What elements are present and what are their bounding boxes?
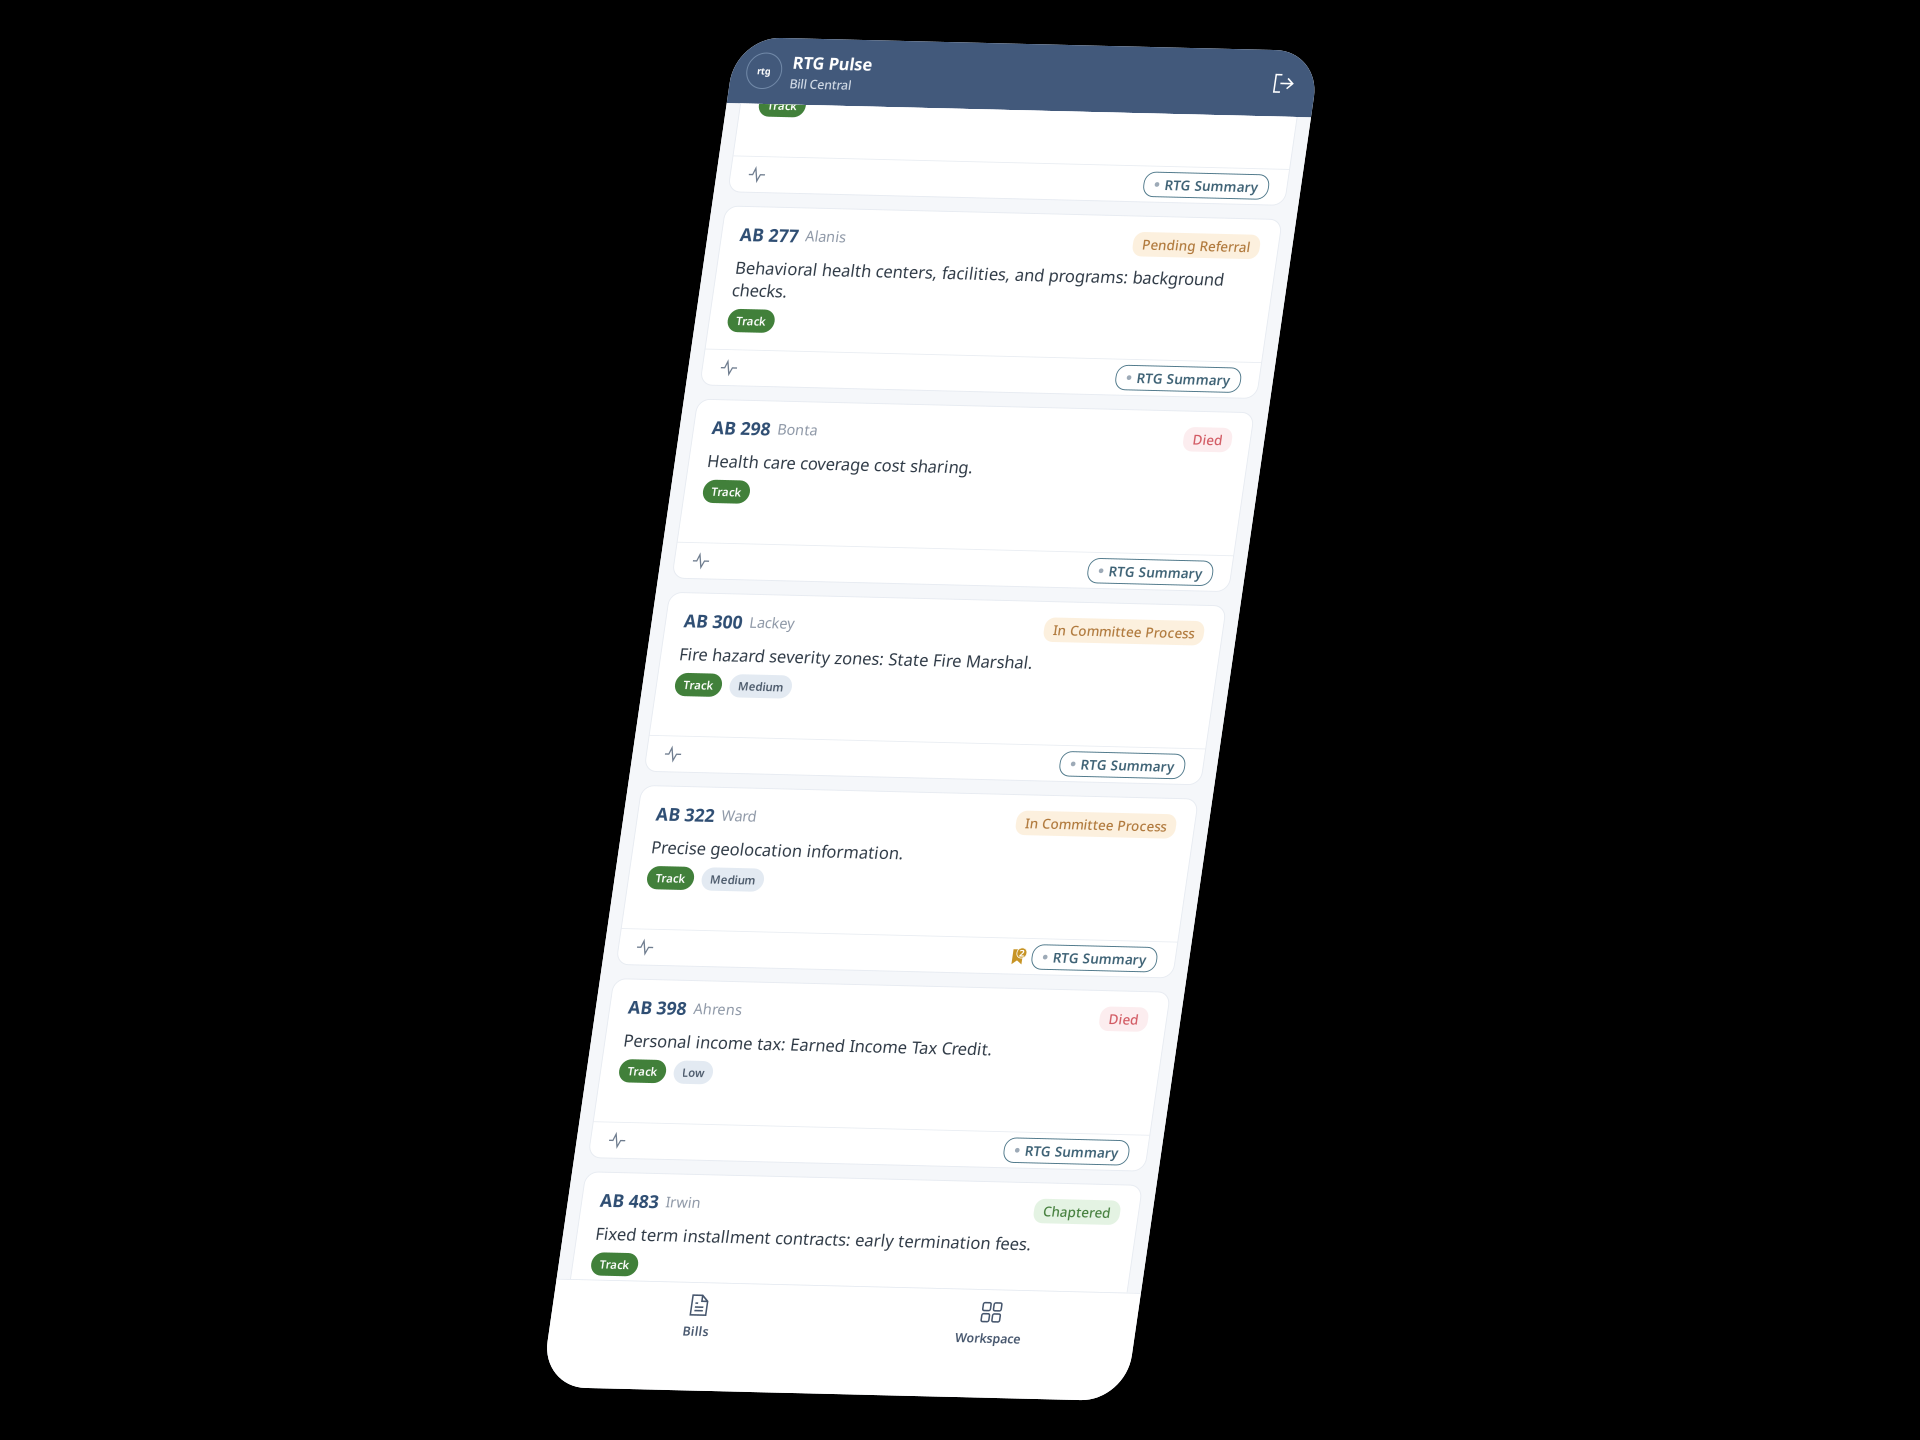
staticText: RTG Summary bbox=[583, 897, 704, 920]
staticText: Died bbox=[667, 483, 706, 506]
staticText: RTG Summary bbox=[583, 407, 704, 430]
staticText: RTG Summary bbox=[583, 1388, 704, 1411]
button[interactable]: RTG Summary bbox=[556, 158, 718, 189]
button[interactable]: RTG Summary bbox=[556, 648, 718, 679]
button[interactable]: RTG Summary bbox=[556, 403, 718, 434]
button[interactable]: RTG Summary bbox=[556, 893, 718, 924]
button[interactable]: Sign out bbox=[696, 20, 740, 64]
staticText: Died bbox=[667, 1218, 706, 1241]
staticText: RTG Summary bbox=[583, 652, 704, 675]
button[interactable]: RTG Summary bbox=[556, 1138, 718, 1169]
staticText: In Committee Process bbox=[522, 728, 706, 751]
button[interactable]: RTG Summary bbox=[556, 1384, 718, 1415]
staticText: In Committee Process bbox=[522, 973, 706, 996]
staticText: RTG Summary bbox=[583, 1142, 704, 1165]
staticText: Pending Referral bbox=[565, 238, 706, 261]
